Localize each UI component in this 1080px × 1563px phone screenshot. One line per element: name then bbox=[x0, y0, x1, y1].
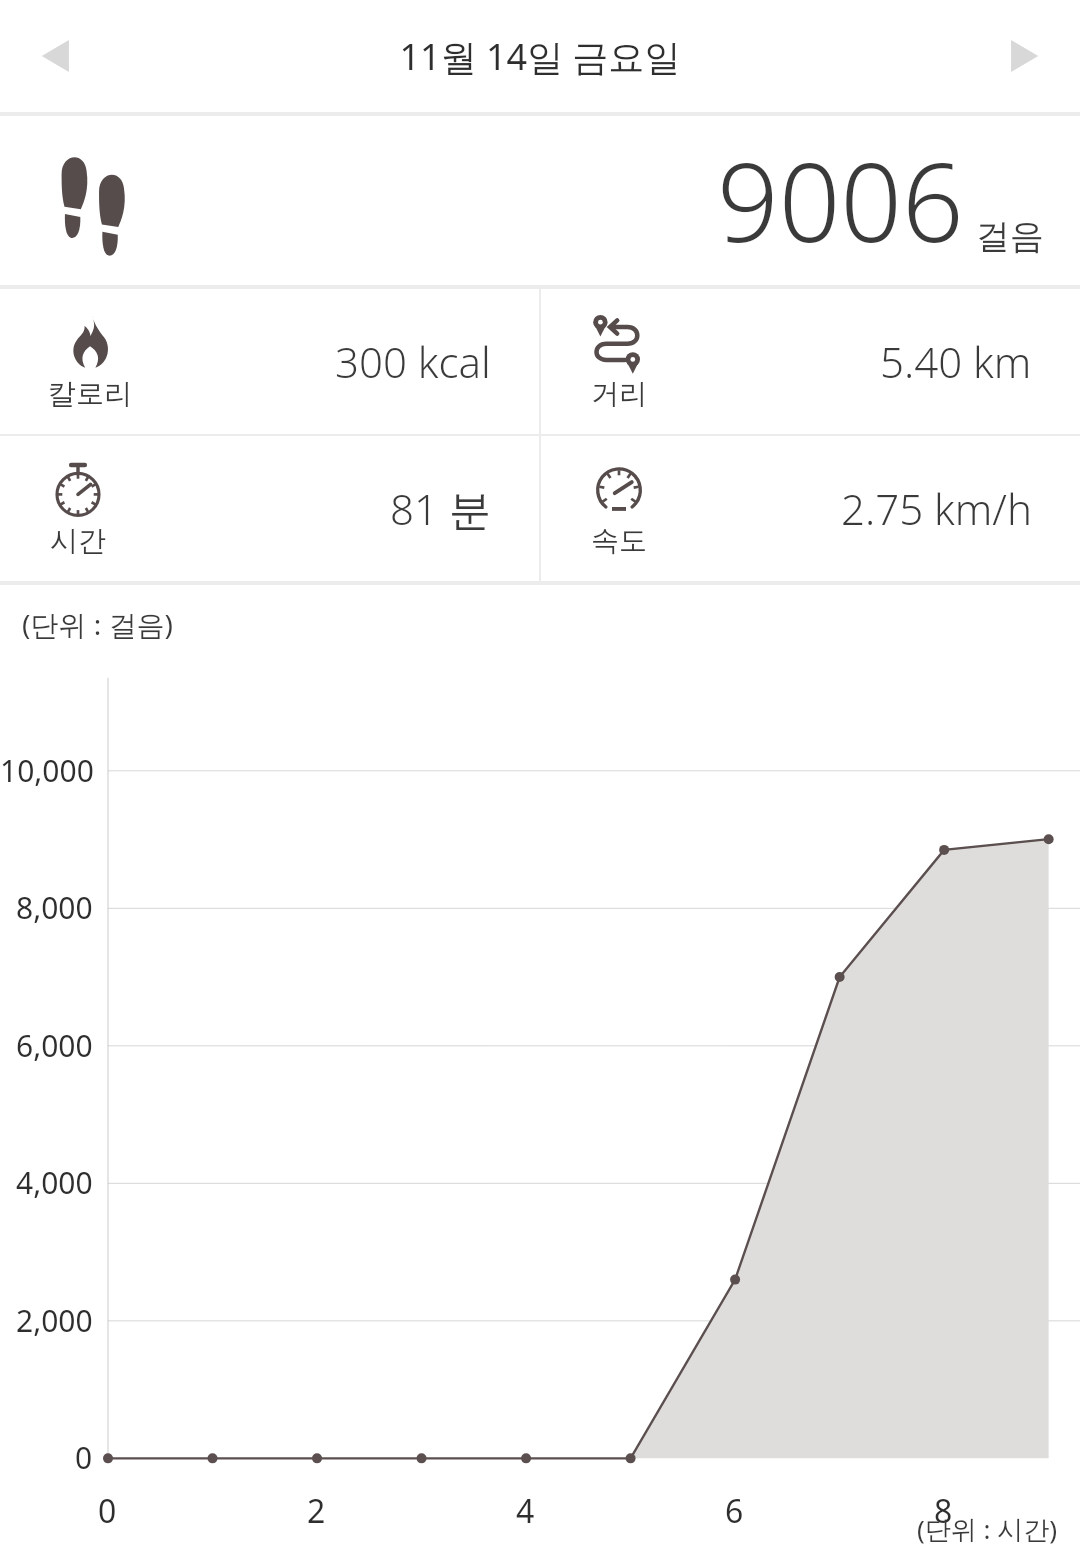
staticText: 속도 bbox=[591, 523, 647, 558]
staticText: 시간 bbox=[50, 523, 106, 558]
staticText: 300 kcal bbox=[335, 333, 491, 390]
button[interactable]: Next day bbox=[968, 0, 1080, 112]
staticText: 81 분 bbox=[390, 480, 491, 537]
button[interactable]: Previous day bbox=[0, 0, 112, 112]
staticText: 칼로리 bbox=[48, 376, 132, 411]
staticText: 0 bbox=[75, 1437, 93, 1478]
staticText: (단위 : 걸음) bbox=[22, 605, 173, 643]
staticText: 5.40 km bbox=[880, 333, 1032, 390]
button[interactable]: 거리 bbox=[541, 289, 1080, 434]
staticText: 2.75 km/h bbox=[841, 480, 1032, 537]
staticText: 8 bbox=[934, 1489, 953, 1533]
button[interactable]: 9006 bbox=[0, 116, 1080, 285]
staticText: (단위 : 시간) bbox=[917, 1511, 1058, 1547]
staticText: 걸음 bbox=[976, 215, 1044, 258]
staticText: 6,000 bbox=[16, 1025, 93, 1066]
button[interactable]: 시간 bbox=[0, 436, 539, 581]
staticText: 11월 14일 금요일 bbox=[399, 32, 681, 81]
staticText: 10,000 bbox=[0, 750, 94, 791]
button[interactable]: 속도 bbox=[541, 436, 1080, 581]
staticText: 9006 bbox=[717, 127, 964, 274]
staticText: 0 bbox=[98, 1489, 117, 1533]
staticText: 2 bbox=[307, 1489, 326, 1533]
staticText: 4,000 bbox=[16, 1162, 93, 1203]
button[interactable]: 칼로리 bbox=[0, 289, 539, 434]
staticText: 8,000 bbox=[16, 887, 93, 928]
staticText: 6 bbox=[725, 1489, 744, 1533]
staticText: 거리 bbox=[591, 376, 647, 411]
staticText: 2,000 bbox=[16, 1300, 93, 1341]
staticText: 4 bbox=[516, 1489, 535, 1533]
